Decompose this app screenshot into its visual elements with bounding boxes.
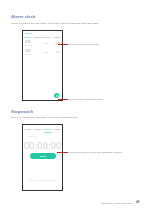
button[interactable]: Add alarm (54, 93, 59, 98)
staticText: Sat, Sun (25, 53, 32, 55)
button[interactable]: Toggle alarm (56, 42, 60, 44)
staticText: 45 (136, 200, 140, 204)
staticText: Alarm (43, 51, 49, 54)
staticText: 00h 00m (28, 135, 37, 138)
staticText: Stopwatch (11, 109, 34, 115)
button[interactable]: TIMER (54, 128, 61, 131)
staticText: Touch to set the alarm time. (69, 43, 100, 46)
staticText: Chapter 5 : Tools and Apps (101, 201, 133, 204)
staticText: ALARM (24, 36, 32, 39)
button[interactable]: STPWCH (43, 36, 52, 39)
button[interactable]: 6:30 (25, 40, 60, 46)
staticText: Touch to access the clock app. Touch the… (11, 115, 78, 118)
staticText: 6:30 (25, 40, 31, 44)
staticText: ALARM (24, 128, 32, 131)
button[interactable]: WORLD (34, 36, 42, 39)
staticText: Touch this button to start the stopwatch… (69, 151, 123, 154)
staticText: Touch LAP to record lap times (23, 179, 62, 182)
button[interactable]: TIMER (54, 36, 61, 39)
button[interactable]: WORLD (34, 128, 42, 131)
staticText: Alarm (25, 32, 32, 35)
button[interactable]: STPWCH (43, 128, 52, 131)
staticText: Alarm clock (11, 14, 36, 20)
staticText: START (40, 155, 47, 158)
button[interactable]: START (30, 153, 56, 159)
staticText: STPWCH (43, 36, 52, 39)
button[interactable]: ALARM (24, 128, 32, 131)
staticText: Touch to add a new alarm time. (69, 98, 103, 101)
button[interactable]: ALARM (24, 36, 32, 39)
staticText: Alarm (43, 42, 49, 45)
staticText: 00:00:00 (23, 139, 62, 152)
staticText: 7:00 (25, 49, 31, 53)
staticText: Mon, Tue, Wed (25, 44, 36, 46)
button[interactable]: 7:00 (25, 49, 60, 55)
staticText: WORLD (34, 128, 42, 131)
staticText: TIMER (54, 36, 61, 39)
staticText: WORLD (34, 36, 42, 39)
button[interactable]: Toggle alarm (56, 51, 60, 53)
staticText: TIMER (54, 128, 61, 131)
staticText: STPWCH (43, 128, 52, 131)
staticText: Touch to access the clock app. Touch the… (11, 21, 100, 24)
